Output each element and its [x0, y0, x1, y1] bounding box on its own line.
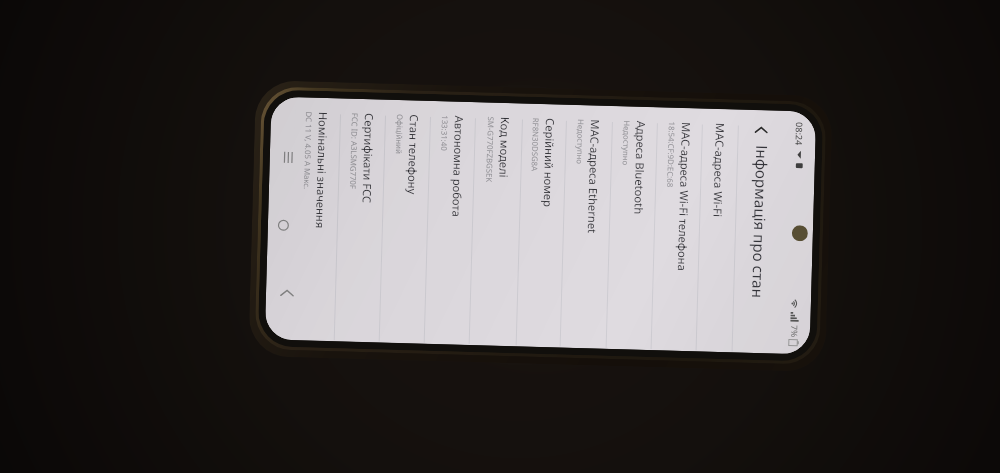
staticText: MAC-адреса Ethernet [585, 119, 603, 234]
staticText: 7% [788, 325, 800, 337]
button[interactable]: MAC-адреса Wi-Fi телефона [652, 108, 702, 350]
button[interactable]: Back [748, 117, 775, 143]
button[interactable]: Home [268, 209, 299, 240]
button[interactable]: Код моделі [470, 103, 522, 345]
staticText: FCC ID: A3LSMG770F [347, 113, 360, 190]
staticText: Серійний номер [540, 118, 558, 207]
staticText: 133:31:40 [438, 115, 450, 151]
staticText: 18:54:CF:9D:EC:68 [664, 121, 677, 188]
button[interactable]: Адреса Bluetooth [607, 107, 657, 349]
staticText: Стан телефону [405, 114, 422, 195]
staticText: Інформація про стан [747, 145, 772, 298]
button[interactable]: MAC-адреса Wi-Fi [697, 109, 738, 351]
staticText: Офіційний [393, 114, 405, 154]
button[interactable]: Номінальні значення [289, 98, 340, 340]
staticText: Код моделі [496, 117, 513, 178]
button[interactable]: Автономна робота [425, 102, 475, 344]
staticText: 08:24 [793, 122, 806, 146]
button[interactable]: Сертифікати FCC [335, 99, 385, 341]
staticText: Автономна робота [449, 115, 467, 218]
staticText: Адреса Bluetooth [631, 121, 649, 215]
staticText: RF8N30DSG8A [528, 118, 541, 172]
staticText: Недоступно [620, 120, 632, 165]
staticText: Номінальні значення [313, 112, 331, 229]
button[interactable]: Recent apps [273, 141, 304, 172]
button[interactable]: Стан телефону [380, 101, 430, 343]
staticText: MAC-адреса Wi-Fi [710, 123, 728, 217]
staticText: Сертифікати FCC [360, 113, 377, 203]
staticText: Недоступно [574, 119, 586, 164]
staticText: MAC-адреса Wi-Fi телефона [675, 122, 694, 271]
button[interactable]: Серійний номер [517, 104, 566, 347]
staticText: SM-G770FZBGSEK [483, 116, 496, 183]
staticText: DC 11 V, 4.05 A Макс. [301, 111, 314, 190]
button[interactable]: MAC-адреса Ethernet [561, 106, 612, 348]
button[interactable]: Back [272, 277, 302, 308]
